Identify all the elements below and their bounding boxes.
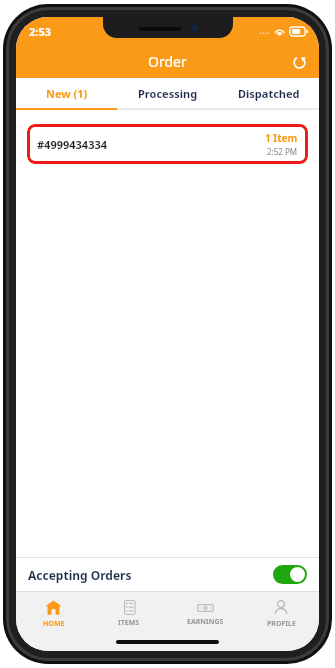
button[interactable]: New (1) <box>16 78 117 108</box>
button[interactable]: Accepting Orders toggle <box>273 565 307 584</box>
staticText: Order <box>148 52 187 71</box>
button[interactable]: Dispatched <box>218 78 319 108</box>
staticText: EARNINGS <box>187 617 224 627</box>
staticText: New (1) <box>46 86 88 101</box>
button[interactable]: PROFILE <box>243 592 319 636</box>
staticText: Dispatched <box>238 86 300 101</box>
button[interactable]: Refresh <box>284 47 314 77</box>
staticText: Processing <box>138 86 198 101</box>
staticText: HOME <box>43 619 65 629</box>
button[interactable]: HOME <box>16 592 91 636</box>
staticText: 2:53 <box>29 24 51 39</box>
button[interactable]: #4999434334 <box>27 124 308 164</box>
button[interactable]: Processing <box>117 78 218 108</box>
button[interactable]: ITEMS <box>91 592 167 636</box>
staticText: Accepting Orders <box>28 567 132 583</box>
staticText: #4999434334 <box>37 137 108 152</box>
staticText: PROFILE <box>267 619 296 629</box>
staticText: 1 Item <box>265 131 298 145</box>
staticText: 2:52 PM <box>267 146 298 157</box>
button[interactable]: EARNINGS <box>167 592 243 636</box>
button[interactable]: Accepting Orders <box>16 558 319 591</box>
staticText: ITEMS <box>118 618 140 628</box>
